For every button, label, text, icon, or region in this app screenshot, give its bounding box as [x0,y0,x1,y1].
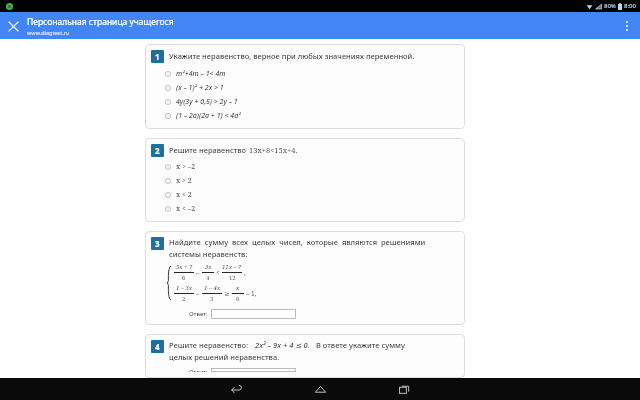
staticText: – [196,268,200,277]
button[interactable]: x < 2 [165,188,459,202]
staticText: Найдите сумму всех целых чисел, которые … [169,237,426,247]
button[interactable]: (1 – 2a)(2a + 1) < 4a² [165,109,459,123]
button[interactable]: Recents [382,378,426,400]
staticText: 3 [210,295,214,303]
staticText: 4 [155,341,160,352]
staticText: Решите неравенство: [169,340,249,350]
staticText: , [244,268,246,277]
staticText: x > 2 [176,176,192,186]
staticText: x [236,284,240,292]
staticText: Укажите неравенство, верное при любых зн… [169,51,415,61]
staticText: Ответ: [189,368,208,372]
button[interactable]: 1 [145,44,465,129]
staticText: x > –2 [176,162,196,172]
staticText: 1 – 4x [204,284,221,292]
staticText: 2 [182,295,186,303]
staticText: 2x² – 9x + 4 ≤ 0. [255,340,310,350]
button[interactable]: m²+4m – 1< 4m [165,67,459,81]
staticText: В ответе укажите сумму [316,340,405,350]
button[interactable]: 3 [145,231,465,325]
staticText: m²+4m – 1< 4m [176,69,226,79]
staticText: 12 [229,274,236,282]
staticText: целых решений неравенства. [169,352,280,362]
staticText: www.diagtest.ru [27,29,70,36]
staticText: 80% [604,2,616,10]
staticText: 5x + 7 [176,263,193,271]
staticText: ≥ [224,290,230,298]
staticText: 8:00 [624,2,636,10]
button[interactable]: Answer field [211,368,296,372]
button[interactable]: 4y(3y + 0,5) > 2y – 1 [165,95,459,109]
button[interactable]: 4 [145,334,465,378]
button[interactable]: x > –2 [165,160,459,174]
staticText: x < 2 [176,190,192,200]
button[interactable]: Back [214,378,258,400]
staticText: 13x+8<15x+4. [249,145,298,155]
staticText: системы неравенств: [169,249,248,259]
staticText: – [196,289,200,298]
staticText: (x – 1)² + 2x > 1 [176,83,224,93]
button[interactable]: Home [298,378,342,400]
staticText: (1 – 2a)(2a + 1) < 4a² [176,111,241,121]
button[interactable]: x < –2 [165,202,459,216]
staticText: 6 [182,274,186,282]
button[interactable]: (x – 1)² + 2x > 1 [165,81,459,95]
staticText: 6 [236,295,240,303]
staticText: Персональная страница учащегося [27,16,174,28]
staticText: Ответ: [189,310,208,318]
staticText: – 1, [246,289,257,298]
button[interactable]: Answer field [211,309,296,319]
button[interactable]: x > 2 [165,174,459,188]
staticText: 1 – 3x [176,284,193,292]
staticText: 11x – 7 [222,263,242,271]
staticText: x < –2 [176,204,196,214]
staticText: 4 [206,274,210,282]
staticText: 4y(3y + 0,5) > 2y – 1 [176,97,238,107]
staticText: 1 [155,51,160,62]
button[interactable]: Close [3,16,23,36]
staticText: Решите неравенство [169,145,249,155]
staticText: 3 [155,238,160,249]
staticText: 3x [205,263,212,271]
staticText: 2 [155,145,160,156]
button[interactable]: 2 [145,138,465,222]
staticText: < [216,268,220,277]
button[interactable]: More options [617,16,637,36]
